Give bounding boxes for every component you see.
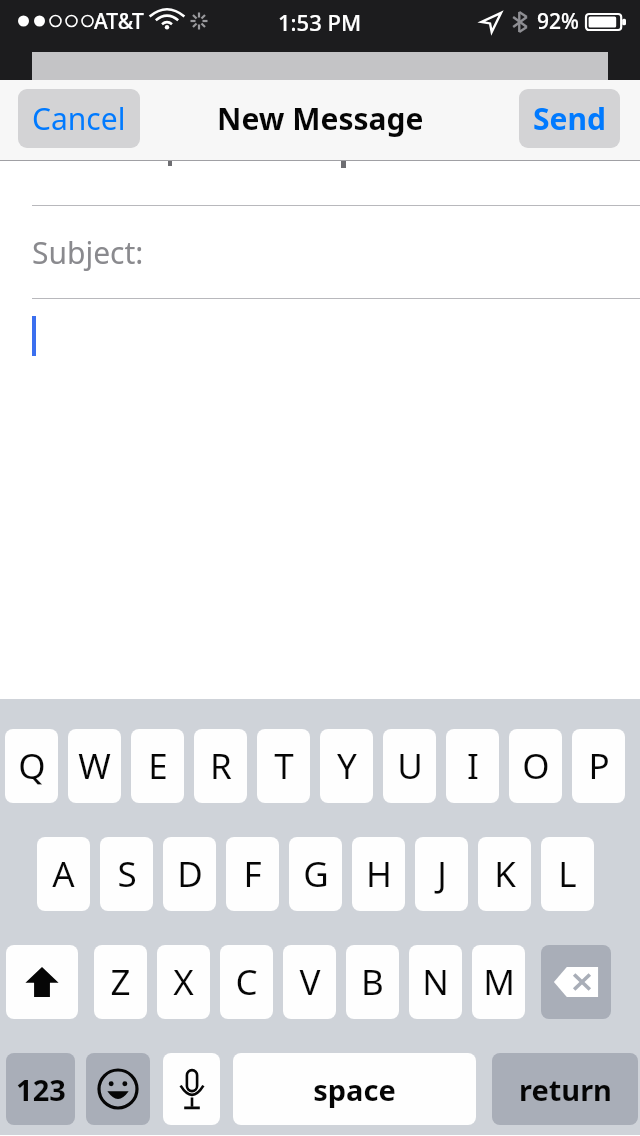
- staticText: V: [299, 958, 321, 1006]
- button[interactable]: Dictation: [163, 1053, 220, 1125]
- staticText: H: [366, 850, 392, 898]
- button[interactable]: return: [492, 1053, 638, 1125]
- button[interactable]: T: [257, 729, 310, 803]
- button[interactable]: Send: [519, 89, 620, 148]
- staticText: E: [148, 742, 168, 790]
- button[interactable]: N: [409, 945, 462, 1019]
- button[interactable]: Y: [320, 729, 373, 803]
- staticText: Subject:: [32, 232, 144, 273]
- staticText: D: [177, 850, 203, 898]
- button[interactable]: P: [572, 729, 625, 803]
- button[interactable]: U: [383, 729, 436, 803]
- button[interactable]: E: [131, 729, 184, 803]
- button[interactable]: Q: [5, 729, 58, 803]
- button[interactable]: M: [472, 945, 525, 1019]
- button[interactable]: G: [289, 837, 342, 911]
- button[interactable]: F: [226, 837, 279, 911]
- button[interactable]: space: [233, 1053, 476, 1125]
- staticText: T: [274, 742, 294, 790]
- staticText: Q: [18, 742, 46, 790]
- staticText: F: [243, 850, 262, 898]
- staticText: A: [52, 850, 75, 898]
- button[interactable]: Cancel: [18, 89, 140, 148]
- button[interactable]: H: [352, 837, 405, 911]
- staticText: O: [522, 742, 550, 790]
- staticText: L: [558, 850, 577, 898]
- button[interactable]: Shift: [6, 945, 78, 1019]
- staticText: K: [494, 850, 516, 898]
- button[interactable]: C: [220, 945, 273, 1019]
- button[interactable]: Subject:: [0, 206, 640, 298]
- staticText: New Message: [217, 98, 424, 139]
- button[interactable]: A: [37, 837, 90, 911]
- button[interactable]: [0, 299, 640, 699]
- staticText: space: [313, 1070, 396, 1109]
- staticText: 1:53 PM: [278, 7, 362, 37]
- button[interactable]: I: [446, 729, 499, 803]
- staticText: N: [422, 958, 449, 1006]
- button[interactable]: Emoji keyboard: [86, 1053, 150, 1125]
- staticText: W: [78, 742, 111, 790]
- staticText: P: [588, 742, 610, 790]
- staticText: J: [437, 850, 447, 898]
- button[interactable]: X: [157, 945, 210, 1019]
- staticText: G: [303, 850, 329, 898]
- button[interactable]: Z: [94, 945, 147, 1019]
- button[interactable]: S: [100, 837, 153, 911]
- staticText: X: [173, 958, 194, 1006]
- button[interactable]: D: [163, 837, 216, 911]
- button[interactable]: O: [509, 729, 562, 803]
- button[interactable]: V: [283, 945, 336, 1019]
- button[interactable]: L: [541, 837, 594, 911]
- staticText: Cancel: [32, 98, 126, 139]
- staticText: C: [235, 958, 258, 1006]
- button[interactable]: R: [194, 729, 247, 803]
- staticText: return: [519, 1070, 612, 1109]
- staticText: U: [397, 742, 423, 790]
- staticText: B: [361, 958, 384, 1006]
- staticText: M: [483, 958, 515, 1006]
- staticText: 92%: [537, 7, 579, 36]
- staticText: S: [117, 850, 137, 898]
- staticText: I: [467, 742, 479, 790]
- button[interactable]: J: [415, 837, 468, 911]
- staticText: 123: [16, 1070, 66, 1109]
- button[interactable]: 123: [6, 1053, 75, 1125]
- staticText: Y: [337, 742, 357, 790]
- staticText: AT&T: [94, 7, 144, 36]
- staticText: R: [210, 742, 232, 790]
- button[interactable]: Backspace: [541, 945, 611, 1019]
- staticText: Send: [533, 98, 606, 139]
- button[interactable]: K: [478, 837, 531, 911]
- button[interactable]: B: [346, 945, 399, 1019]
- staticText: Z: [110, 958, 131, 1006]
- button[interactable]: W: [68, 729, 121, 803]
